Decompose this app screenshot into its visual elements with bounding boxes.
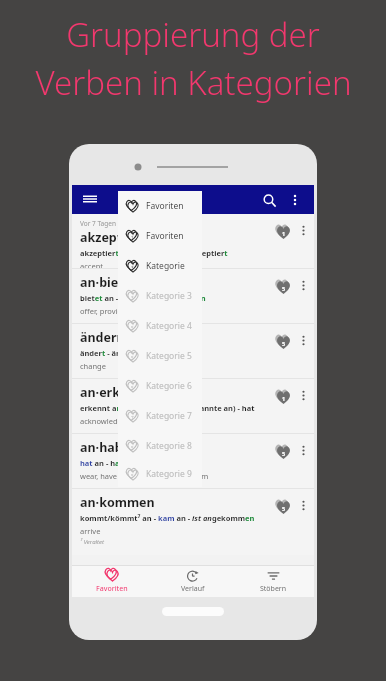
staticText: 5 bbox=[131, 445, 134, 451]
staticText: an·bieten bbox=[80, 274, 140, 291]
staticText: Kategorie 6 bbox=[146, 380, 192, 392]
staticText: an·erkennen bbox=[80, 384, 160, 401]
staticText: an·haben bbox=[80, 439, 139, 456]
button[interactable]: 5 bbox=[118, 371, 202, 401]
button[interactable]: 3 bbox=[118, 251, 202, 281]
button[interactable]: Favoriten bbox=[118, 191, 202, 221]
staticText: erkennt an - erkannte an (anerkannte an)… bbox=[80, 403, 272, 413]
button[interactable]: Item menu bbox=[294, 331, 312, 349]
staticText: ändert - änderte - hat geändert bbox=[80, 348, 197, 358]
staticText: akzeptiert - akzeptierte - hat akzeptier… bbox=[80, 248, 228, 258]
button[interactable]: Favorite 1 bbox=[272, 221, 294, 243]
staticText: wear, have on, be switched on, harm bbox=[80, 471, 209, 481]
staticText: 5 bbox=[282, 505, 286, 512]
staticText: Stöbern bbox=[260, 584, 287, 594]
button[interactable]: Favorite 1 bbox=[272, 386, 294, 408]
staticText: Kategorie 8 bbox=[146, 440, 192, 452]
button[interactable]: Menu bbox=[76, 185, 104, 213]
staticText: 5 bbox=[282, 285, 286, 292]
button[interactable]: Favorite 5 bbox=[272, 331, 294, 353]
button[interactable]: Stöbern bbox=[233, 565, 314, 597]
staticText: ändern bbox=[80, 329, 125, 346]
staticText: ⁷ Veraltet bbox=[80, 538, 105, 546]
staticText: 7 bbox=[131, 415, 134, 421]
staticText: Kategorie 4 bbox=[146, 320, 192, 332]
staticText: Kategorie 9 bbox=[146, 468, 192, 480]
staticText: 1 bbox=[131, 235, 134, 241]
button[interactable]: More options bbox=[283, 188, 307, 212]
button[interactable]: ändern bbox=[72, 324, 314, 378]
staticText: an·kommen bbox=[80, 494, 155, 511]
staticText: Verben in Kategorien bbox=[35, 60, 352, 105]
staticText: 5 bbox=[282, 450, 286, 457]
button[interactable]: Search bbox=[256, 187, 282, 213]
staticText: 5 bbox=[131, 355, 134, 361]
staticText: Favoriten bbox=[146, 230, 184, 242]
button[interactable]: 5 bbox=[118, 431, 202, 461]
button[interactable]: Item menu bbox=[294, 221, 312, 239]
staticText: 5 bbox=[131, 325, 134, 331]
staticText: Favoriten bbox=[146, 200, 184, 212]
staticText: acknowledge, recognize bbox=[80, 416, 165, 426]
staticText: 1 bbox=[282, 230, 286, 237]
button[interactable]: Item menu bbox=[294, 276, 312, 294]
staticText: Gruppierung der bbox=[66, 12, 320, 57]
staticText: 5 bbox=[131, 473, 134, 479]
staticText: arrive bbox=[80, 526, 101, 536]
staticText: Kategorie bbox=[146, 260, 185, 272]
button[interactable]: Favorite 5 bbox=[272, 441, 294, 463]
button[interactable]: an·kommen bbox=[72, 489, 314, 555]
staticText: 3 bbox=[131, 265, 134, 271]
button[interactable]: an·erkennen bbox=[72, 379, 314, 433]
button[interactable]: Favorite 5 bbox=[272, 496, 294, 518]
staticText: hat an - hat an - hat angehabt bbox=[80, 458, 191, 468]
button[interactable]: 1 bbox=[118, 221, 202, 251]
staticText: Kategorie 5 bbox=[146, 350, 192, 362]
staticText: accept bbox=[80, 261, 103, 268]
button[interactable]: Item menu bbox=[294, 386, 312, 404]
staticText: Kategorie 3 bbox=[146, 290, 192, 302]
button[interactable]: an·haben bbox=[72, 434, 314, 488]
button[interactable]: Vor 7 Tagen bbox=[72, 214, 314, 268]
button[interactable]: 5 bbox=[118, 461, 202, 487]
button[interactable]: Item menu bbox=[294, 441, 312, 459]
button[interactable]: Favorite 5 bbox=[272, 276, 294, 298]
button[interactable]: Favoriten bbox=[72, 565, 152, 597]
staticText: offer, provide bbox=[80, 306, 127, 316]
staticText: akzeptieren bbox=[80, 229, 155, 246]
button[interactable]: an·bieten bbox=[72, 269, 314, 323]
staticText: 5 bbox=[282, 340, 286, 347]
button[interactable]: Item menu bbox=[294, 496, 312, 514]
button[interactable]: 3 bbox=[118, 281, 202, 311]
staticText: kommt/kömmt⁷ an - kam an - ist angekomme… bbox=[80, 513, 255, 523]
button[interactable]: 7 bbox=[118, 401, 202, 431]
staticText: 1 bbox=[282, 395, 286, 402]
staticText: Verlauf bbox=[181, 584, 205, 594]
staticText: Kategorie 7 bbox=[146, 410, 192, 422]
staticText: bietet an - bot an - hat angeboten bbox=[80, 293, 206, 303]
button[interactable]: 5 bbox=[118, 341, 202, 371]
staticText: 5 bbox=[131, 385, 134, 391]
staticText: 3 bbox=[131, 295, 134, 301]
button[interactable]: 5 bbox=[118, 311, 202, 341]
staticText: change bbox=[80, 361, 106, 371]
button[interactable]: Verlauf bbox=[152, 565, 233, 597]
staticText: Vor 7 Tagen bbox=[80, 219, 116, 228]
staticText: Favoriten bbox=[96, 584, 128, 594]
